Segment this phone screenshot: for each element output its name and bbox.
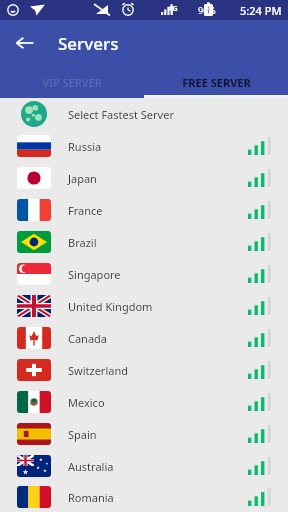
staticText: Servers (58, 32, 119, 55)
staticText: 5:24 PM (240, 3, 282, 18)
staticText: 90% (198, 4, 216, 16)
button[interactable]: Switzerland (0, 354, 288, 386)
staticText: United Kingdom (68, 299, 248, 314)
staticText: Russia (68, 139, 248, 154)
staticText: FREE SERVER (182, 75, 251, 90)
button[interactable]: Romania (0, 482, 288, 512)
staticText: Romania (68, 490, 248, 505)
button[interactable]: United Kingdom (0, 290, 288, 322)
staticText: Singapore (68, 267, 248, 282)
button[interactable]: Back (8, 26, 42, 60)
staticText: Brazil (68, 235, 248, 250)
staticText: Switzerland (68, 363, 248, 378)
staticText: 4G (168, 3, 178, 13)
button[interactable]: Select Fastest Server (0, 98, 288, 130)
staticText: France (68, 203, 248, 218)
staticText: VIP SERVER (42, 75, 102, 90)
staticText: Canada (68, 331, 248, 346)
button[interactable]: Spain (0, 418, 288, 450)
staticText: Japan (68, 171, 248, 186)
button[interactable]: FREE SERVER (144, 66, 288, 98)
staticText: Spain (68, 427, 248, 442)
button[interactable]: Canada (0, 322, 288, 354)
staticText: Australia (68, 459, 248, 474)
staticText: Mexico (68, 395, 248, 410)
button[interactable]: Australia (0, 450, 288, 482)
staticText: Select Fastest Server (68, 107, 174, 122)
button[interactable]: France (0, 194, 288, 226)
button[interactable]: Brazil (0, 226, 288, 258)
button[interactable]: Mexico (0, 386, 288, 418)
button[interactable]: VIP SERVER (0, 66, 144, 98)
button[interactable]: Singapore (0, 258, 288, 290)
button[interactable]: Russia (0, 130, 288, 162)
button[interactable]: Japan (0, 162, 288, 194)
